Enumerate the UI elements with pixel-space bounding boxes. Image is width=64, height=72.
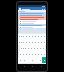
button[interactable]: Key [20, 34, 22, 39]
button[interactable]: Key [40, 39, 43, 45]
button[interactable] [19, 14, 46, 16]
button[interactable]: Key [22, 39, 25, 45]
button[interactable]: Key [20, 39, 22, 45]
button[interactable]: Key [30, 45, 33, 51]
button[interactable] [19, 24, 46, 26]
button[interactable]: Key [27, 45, 30, 51]
button[interactable]: Key [25, 39, 28, 45]
button[interactable]: Period [39, 57, 42, 63]
button[interactable]: Comma [23, 57, 26, 63]
button[interactable]: Key [20, 45, 22, 51]
button[interactable]: Key [31, 51, 34, 57]
button[interactable]: Toolbar [18, 7, 46, 10]
button[interactable] [19, 22, 46, 24]
button[interactable]: Key [28, 51, 31, 57]
button[interactable]: Key [25, 34, 28, 39]
button[interactable]: Key [39, 45, 42, 51]
button[interactable]: Key [37, 39, 40, 45]
button[interactable] [19, 26, 46, 28]
button[interactable] [19, 18, 46, 20]
button[interactable] [19, 20, 46, 22]
button[interactable]: Key [31, 34, 34, 39]
button[interactable]: Key [43, 51, 46, 57]
button[interactable]: Key [28, 39, 31, 45]
button[interactable]: Enter [42, 57, 46, 63]
button[interactable]: Back [22, 65, 26, 68]
button[interactable]: Key [25, 51, 28, 57]
button[interactable]: Key [31, 39, 34, 45]
button[interactable]: Key [34, 51, 37, 57]
button[interactable]: Key [43, 39, 46, 45]
button[interactable]: Key [37, 34, 40, 39]
button[interactable]: Key [43, 34, 46, 39]
button[interactable]: Key [37, 51, 40, 57]
button[interactable]: Key [22, 51, 25, 57]
button[interactable]: Key [34, 34, 37, 39]
button[interactable] [19, 16, 46, 18]
button[interactable]: Key [18, 34, 20, 39]
button[interactable]: Key [22, 34, 25, 39]
button[interactable]: Key [24, 45, 27, 51]
button[interactable]: Key [19, 51, 22, 57]
button[interactable]: Key [40, 51, 43, 57]
button[interactable]: Key [28, 34, 31, 39]
button[interactable]: Key [36, 45, 39, 51]
button[interactable]: Key [18, 39, 20, 45]
button[interactable]: Key [33, 45, 36, 51]
button[interactable]: Home [30, 65, 34, 68]
button[interactable]: Key [22, 45, 24, 51]
button[interactable] [19, 12, 46, 14]
button[interactable]: Key [34, 39, 37, 45]
button[interactable]: Key [40, 34, 43, 39]
button[interactable]: Recents [39, 65, 43, 68]
button[interactable]: Space [26, 57, 39, 63]
button[interactable]: Key [42, 45, 45, 51]
button[interactable]: Symbols [18, 57, 23, 63]
